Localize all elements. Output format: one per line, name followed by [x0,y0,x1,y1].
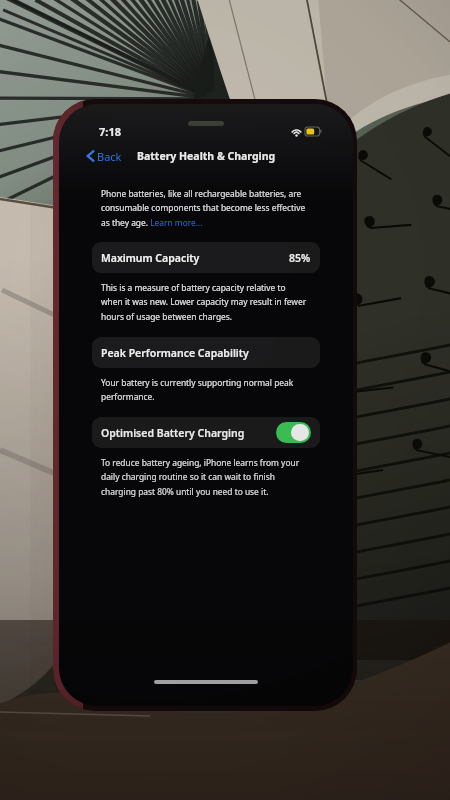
staticText: Peak Performance Capability [101,346,249,360]
staticText: 7:18 [99,124,121,138]
button[interactable]: Maximum Capacity [92,242,320,273]
staticText: To reduce battery ageing, iPhone learns … [101,457,309,498]
staticText: Phone batteries, like all rechargeable b… [101,188,309,229]
staticText: 85% [289,251,311,265]
button[interactable]: Peak Performance Capability [92,337,320,368]
button[interactable]: Optimised Battery Charging, on [276,422,311,443]
staticText: Your battery is currently supporting nor… [101,377,309,403]
staticText: Battery Health & Charging [137,149,276,163]
staticText: This is a measure of battery capacity re… [101,282,309,323]
button[interactable]: Back [86,147,123,165]
staticText: Optimised Battery Charging [101,426,245,440]
staticText: Back [97,149,122,163]
button[interactable]: Optimised Battery Charging [92,417,320,448]
staticText: Maximum Capacity [101,251,200,265]
